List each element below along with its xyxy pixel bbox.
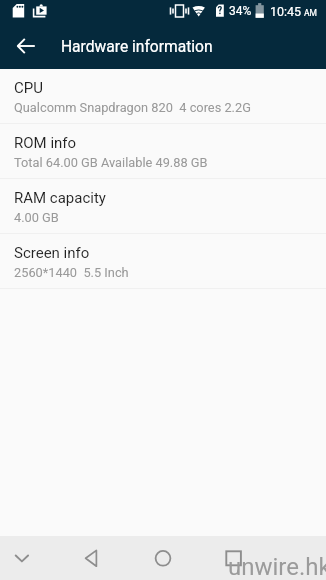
staticText: 4.00 GB: [14, 210, 59, 225]
button[interactable]: Screen info: [0, 234, 326, 289]
button[interactable]: RAM capacity: [0, 179, 326, 234]
staticText: RAM capacity: [14, 189, 106, 207]
staticText: AM: [304, 8, 317, 18]
staticText: unwire.hk: [228, 553, 326, 580]
staticText: Qualcomm Snapdragon 820 4 cores 2.2G: [14, 100, 251, 115]
staticText: Hardware information: [61, 38, 213, 56]
staticText: 2560*1440 5.5 Inch: [14, 265, 129, 280]
button[interactable]: Hide keyboard: [0, 536, 57, 580]
staticText: ROM info: [14, 134, 77, 152]
button[interactable]: Home: [128, 536, 198, 580]
staticText: 10:45: [270, 4, 302, 19]
button[interactable]: Back: [57, 536, 128, 580]
button[interactable]: CPU: [0, 69, 326, 124]
staticText: 34%: [229, 4, 252, 18]
staticText: Total 64.00 GB Available 49.88 GB: [14, 155, 208, 170]
button[interactable]: ROM info: [0, 124, 326, 179]
button[interactable]: Recents: [198, 536, 268, 580]
button[interactable]: Back: [7, 28, 43, 64]
staticText: CPU: [14, 79, 43, 97]
staticText: Screen info: [14, 244, 90, 262]
